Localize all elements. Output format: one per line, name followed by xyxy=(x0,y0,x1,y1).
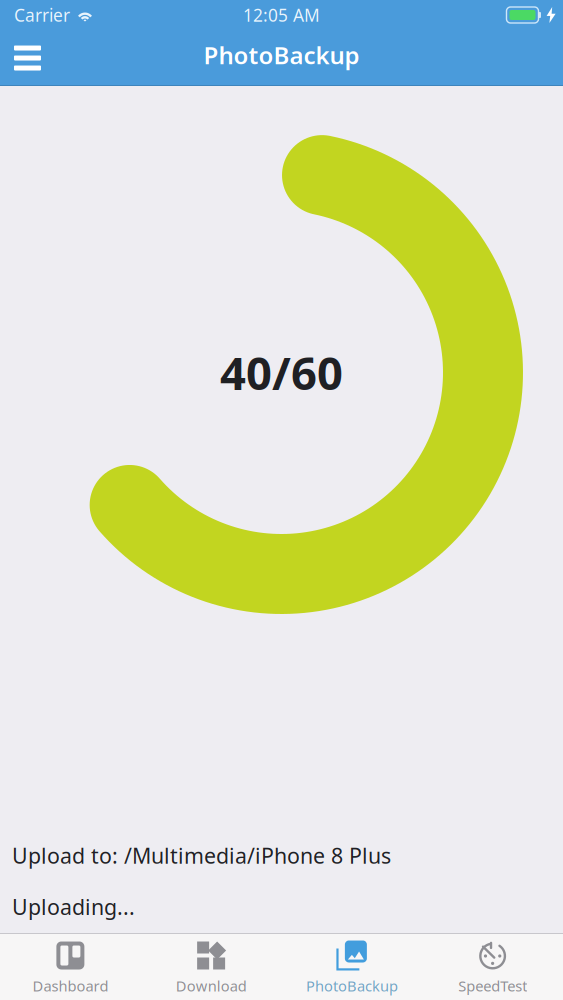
staticText: Dashboard xyxy=(32,976,108,995)
staticText: SpeedTest xyxy=(458,976,527,995)
staticText: 12:05 AM xyxy=(243,3,320,26)
button[interactable]: PhotoBackup xyxy=(281,934,422,1000)
button[interactable]: Menu xyxy=(0,30,55,86)
button[interactable]: Download xyxy=(141,934,282,1000)
staticText: PhotoBackup xyxy=(203,39,359,71)
staticText: Upload to: /Multimedia/iPhone 8 Plus xyxy=(12,841,391,870)
staticText: Download xyxy=(176,976,247,995)
staticText: Carrier xyxy=(14,3,70,26)
button[interactable]: Dashboard xyxy=(0,934,141,1000)
staticText: 40/60 xyxy=(220,342,343,403)
staticText: PhotoBackup xyxy=(306,976,398,995)
staticText: Uploading... xyxy=(12,893,135,921)
button[interactable]: SpeedTest xyxy=(422,934,563,1000)
